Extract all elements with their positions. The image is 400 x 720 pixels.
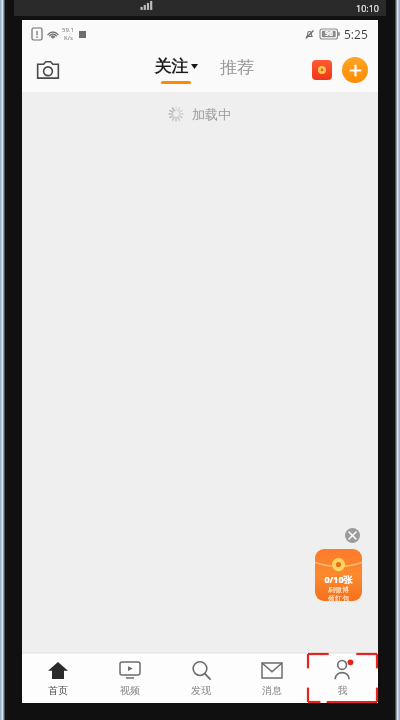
- staticText: 视频: [120, 684, 140, 697]
- staticText: 领红包: [328, 594, 349, 601]
- staticText: 首页: [48, 684, 68, 697]
- staticText: 加载中: [192, 106, 231, 122]
- staticText: 发现: [191, 684, 211, 697]
- button[interactable]: 首页: [22, 653, 94, 703]
- button[interactable]: Red packet task: [315, 549, 362, 601]
- staticText: 关注: [154, 56, 188, 77]
- button[interactable]: Compose: [342, 57, 368, 83]
- staticText: 59.1: [62, 26, 74, 34]
- staticText: K/s: [64, 34, 73, 42]
- button[interactable]: 消息: [236, 653, 307, 703]
- staticText: 推荐: [220, 57, 254, 78]
- staticText: 96: [325, 29, 334, 39]
- button[interactable]: 视频: [94, 653, 165, 703]
- button[interactable]: 发现: [165, 653, 236, 703]
- staticText: 5:25: [344, 26, 368, 42]
- button[interactable]: 关注: [154, 56, 198, 84]
- button[interactable]: 推荐: [220, 57, 254, 84]
- button[interactable]: Close: [345, 528, 360, 543]
- button[interactable]: Camera: [30, 52, 66, 88]
- staticText: 刷微博: [328, 585, 349, 594]
- button[interactable]: 我: [307, 653, 378, 703]
- staticText: 10:10: [356, 2, 380, 14]
- staticText: 我: [338, 684, 348, 697]
- staticText: 0/10张: [324, 573, 353, 585]
- staticText: 消息: [262, 684, 282, 697]
- button[interactable]: Red packet: [312, 60, 332, 80]
